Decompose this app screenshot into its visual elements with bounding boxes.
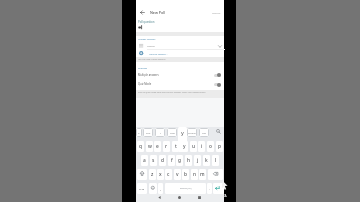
button[interactable]: g (176, 155, 183, 166)
button[interactable]: s (150, 155, 157, 166)
staticText: I (160, 131, 161, 134)
button[interactable]: w (146, 141, 153, 152)
staticText: e (156, 143, 159, 150)
staticText: h (187, 157, 191, 164)
staticText: u (192, 143, 196, 150)
button[interactable]: y (181, 141, 188, 152)
staticText: Multiple answers (138, 73, 159, 77)
button[interactable]: e (154, 141, 161, 152)
button[interactable]: . (207, 183, 212, 194)
staticText: w (148, 143, 152, 150)
staticText: , (160, 187, 161, 191)
button[interactable]: v (174, 169, 181, 180)
button[interactable]: you (143, 128, 153, 137)
staticText: Answer options (138, 37, 156, 40)
staticText: g (178, 157, 181, 164)
button[interactable]: I (155, 128, 165, 137)
button[interactable]: a (136, 128, 142, 137)
button[interactable] (156, 194, 163, 201)
button[interactable] (176, 194, 183, 201)
staticText: that (170, 131, 175, 134)
button[interactable] (137, 169, 147, 180)
staticText: ITA (222, 194, 227, 198)
staticText: c (167, 171, 170, 178)
staticText: i (201, 143, 203, 150)
button[interactable]: the (199, 128, 209, 137)
staticText: z (151, 171, 154, 178)
button[interactable]: m (199, 169, 206, 180)
button[interactable]: n (191, 169, 198, 180)
button[interactable]: f (168, 155, 175, 166)
staticText: the (202, 131, 206, 134)
staticText: l (215, 157, 217, 164)
button[interactable]: Option (136, 42, 224, 50)
button[interactable] (140, 10, 145, 15)
staticText: b (184, 171, 187, 178)
button[interactable] (214, 83, 221, 86)
staticText: . (209, 187, 210, 191)
button[interactable]: English (US) (165, 183, 206, 194)
button[interactable]: q (137, 141, 144, 152)
staticText: q (139, 143, 142, 150)
button[interactable]: Add an option... (136, 50, 224, 57)
button[interactable]: i (198, 141, 205, 152)
button[interactable]: d (159, 155, 166, 166)
button[interactable]: Multiple answers (136, 71, 224, 80)
button[interactable]: c (165, 169, 172, 180)
staticText: Quiz Mode (138, 82, 152, 86)
staticText: o (209, 143, 212, 150)
staticText: a (138, 131, 140, 134)
button[interactable]: l (212, 155, 219, 166)
staticText: English (US) (180, 187, 192, 190)
staticText: Settings (138, 66, 148, 69)
button[interactable]: k (203, 155, 210, 166)
button[interactable] (213, 183, 224, 194)
staticText: Option (147, 44, 156, 47)
button[interactable]: x (157, 169, 164, 180)
staticText: x (159, 171, 162, 178)
staticText: Poll question (138, 20, 155, 24)
staticText: r (165, 143, 168, 150)
button[interactable]: z (149, 169, 156, 180)
button[interactable] (214, 74, 221, 77)
button[interactable]: ything (187, 128, 197, 137)
staticText: ything (188, 131, 196, 134)
button[interactable]: ?123 (137, 183, 147, 194)
staticText: d (161, 157, 164, 164)
staticText: ?123 (139, 187, 145, 190)
button[interactable]: CREATE (212, 11, 221, 14)
staticText: you (146, 131, 151, 134)
button[interactable]: p (216, 141, 223, 152)
staticText: p (218, 143, 221, 150)
staticText: y (183, 143, 186, 150)
staticText: s (152, 157, 155, 164)
button[interactable] (196, 194, 203, 201)
button[interactable]: a (141, 155, 148, 166)
staticText: Add an option... (149, 52, 168, 55)
staticText: j (197, 157, 199, 164)
button[interactable]: h (185, 155, 192, 166)
button[interactable]: , (158, 183, 163, 194)
button[interactable]: that (167, 128, 177, 137)
staticText: k (205, 157, 208, 164)
staticText: f (171, 157, 173, 164)
button[interactable]: u (190, 141, 197, 152)
button[interactable]: r (163, 141, 170, 152)
staticText: Polls in Quiz Mode have one correct answ… (138, 91, 206, 94)
staticText: n (193, 171, 197, 178)
button[interactable] (208, 169, 223, 180)
staticText: v (176, 171, 179, 178)
button[interactable]: Quiz Mode (136, 80, 224, 89)
button[interactable]: t (172, 141, 179, 152)
staticText: t (175, 143, 177, 150)
staticText: You can add 2 more options (138, 58, 166, 61)
button[interactable]: o (207, 141, 214, 152)
button[interactable] (149, 183, 157, 194)
staticText: y (181, 129, 184, 136)
staticText: m (200, 171, 205, 178)
staticText: New Poll (150, 10, 166, 15)
button[interactable]: j (194, 155, 201, 166)
button[interactable]: b (182, 169, 189, 180)
staticText: a (143, 157, 146, 164)
